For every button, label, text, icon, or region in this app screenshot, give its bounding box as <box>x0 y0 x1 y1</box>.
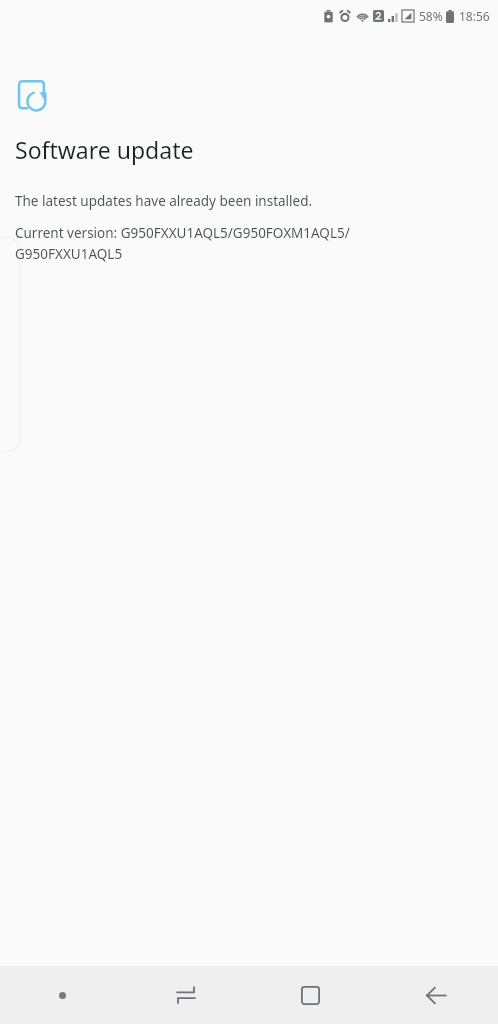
staticText: Current version: G950FXXU1AQL5/G950FOXM1… <box>15 224 350 263</box>
staticText: 18:56 <box>459 8 490 24</box>
button[interactable]: Home <box>248 966 373 1024</box>
staticText: The latest updates have already been ins… <box>15 192 313 210</box>
button[interactable]: Hide keyboard <box>0 966 124 1024</box>
button[interactable]: Recent apps <box>124 966 248 1024</box>
staticText: Software update <box>15 134 194 165</box>
button[interactable]: Back <box>373 966 498 1024</box>
staticText: 58% <box>419 8 443 24</box>
